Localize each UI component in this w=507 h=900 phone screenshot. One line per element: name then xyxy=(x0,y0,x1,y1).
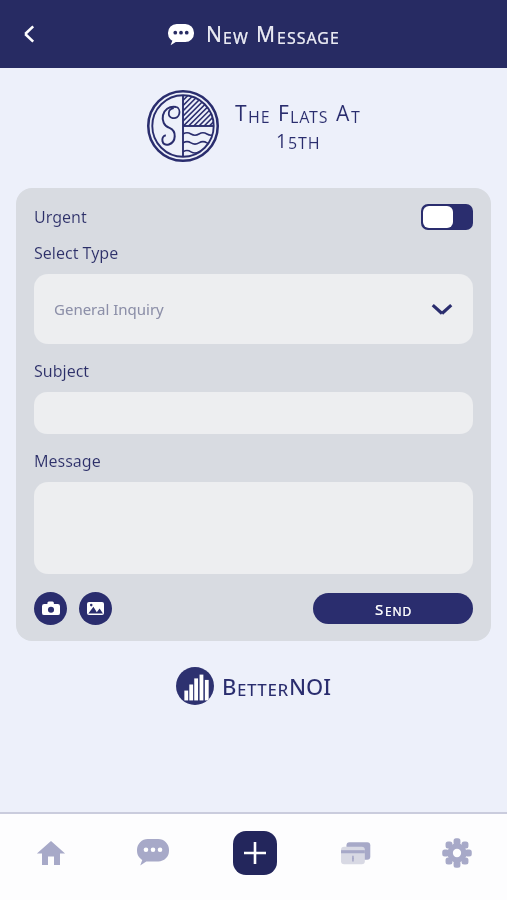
staticText: T xyxy=(235,99,248,128)
button[interactable]: Back xyxy=(6,10,54,58)
staticText: N xyxy=(206,20,223,49)
button[interactable]: Payments xyxy=(305,816,406,890)
button[interactable]: Urgent toggle xyxy=(421,204,473,230)
button[interactable]: Settings xyxy=(406,816,507,890)
staticText: B xyxy=(222,671,237,701)
staticText: T xyxy=(351,106,361,128)
staticText: LATS xyxy=(290,106,329,128)
button[interactable]: Take photo xyxy=(34,592,67,625)
button[interactable]: Home xyxy=(0,816,102,890)
staticText: Message xyxy=(34,450,101,472)
button[interactable]: General Inquiry xyxy=(34,274,473,344)
button[interactable]: S xyxy=(313,593,473,624)
button[interactable]: New xyxy=(204,816,305,890)
staticText: ETTER xyxy=(237,678,289,701)
staticText: Subject xyxy=(34,360,90,382)
staticText: END xyxy=(385,603,412,619)
staticText: 1 xyxy=(276,128,288,154)
staticText: Urgent xyxy=(34,206,87,228)
staticText: EW xyxy=(223,27,249,49)
staticText: A xyxy=(336,99,351,128)
staticText: ESSAGE xyxy=(277,27,340,49)
staticText: HE xyxy=(248,106,271,128)
staticText: NOI xyxy=(289,671,332,701)
staticText: General Inquiry xyxy=(54,299,164,319)
staticText: Select Type xyxy=(34,242,119,264)
staticText: 5TH xyxy=(288,132,321,154)
staticText: S xyxy=(375,599,385,619)
button[interactable]: Attach image xyxy=(79,592,112,625)
staticText: M xyxy=(256,20,277,49)
button[interactable]: Messages xyxy=(102,816,204,890)
staticText: F xyxy=(278,99,290,128)
